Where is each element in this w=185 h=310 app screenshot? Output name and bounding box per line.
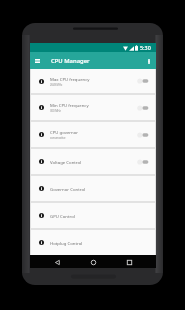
button[interactable]: Open navigation menu: [31, 55, 43, 67]
button[interactable]: Toggle Voltage Control: [137, 154, 152, 170]
staticText: CPU governor: [50, 129, 79, 135]
button[interactable]: Toggle CPU governor: [137, 127, 152, 143]
staticText: Max CPU frequency: [50, 76, 90, 82]
button[interactable]: Toggle Min CPU frequency: [137, 100, 152, 116]
button[interactable]: Voltage Control: [31, 149, 155, 174]
button[interactable]: CPU governor: [31, 122, 155, 147]
button[interactable]: Max CPU frequency: [31, 69, 155, 93]
button[interactable]: Hotplug Control: [31, 230, 155, 255]
staticText: 5:30: [140, 44, 151, 51]
button[interactable]: GPU Control: [31, 203, 155, 228]
button[interactable]: Governor Control: [31, 176, 155, 201]
staticText: Min CPU frequency: [50, 102, 89, 108]
staticText: Governor Control: [50, 186, 86, 192]
staticText: 300 MHz: [50, 109, 61, 113]
staticText: Hotplug Control: [50, 240, 83, 246]
staticText: CPU Manager: [51, 57, 90, 65]
button[interactable]: Back: [51, 256, 63, 268]
button[interactable]: Toggle Max CPU frequency: [137, 73, 152, 89]
staticText: Voltage Control: [50, 159, 82, 165]
staticText: conservative: [50, 136, 66, 140]
button[interactable]: Home: [87, 256, 99, 268]
button[interactable]: Min CPU frequency: [31, 95, 155, 120]
staticText: GPU Control: [50, 213, 75, 219]
staticText: 2649 MHz: [50, 83, 63, 87]
button[interactable]: Recent apps: [123, 256, 135, 268]
button[interactable]: More options: [143, 55, 155, 67]
